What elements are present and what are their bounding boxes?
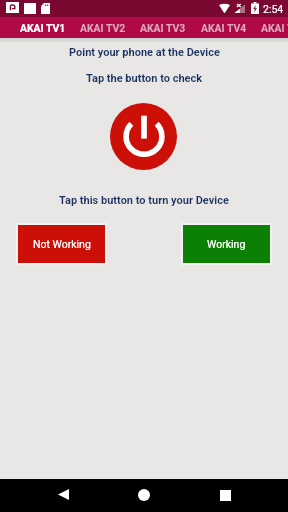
button[interactable]: Home (138, 489, 150, 501)
button[interactable]: Working (183, 225, 270, 263)
button[interactable]: AKAI TV5 (254, 17, 288, 38)
button[interactable]: AKAI TV1 (13, 17, 73, 38)
staticText: AKAI TV1 (20, 22, 66, 34)
button[interactable]: Not Working (18, 225, 105, 263)
staticText: Working (207, 238, 246, 250)
staticText: 2:54 (263, 3, 284, 15)
staticText: Tap this button to turn your Device (59, 194, 229, 207)
staticText: AKAI TV5 (261, 22, 288, 34)
button[interactable]: AKAI TV3 (133, 17, 193, 38)
button[interactable]: AKAI TV4 (194, 17, 254, 38)
staticText: AKAI TV2 (80, 22, 126, 34)
button[interactable]: AKAI TV2 (73, 17, 133, 38)
staticText: Tap the button to check (86, 72, 203, 85)
staticText: AKAI TV3 (140, 22, 186, 34)
button[interactable]: Back (58, 489, 69, 500)
staticText: AKAI TV4 (201, 22, 247, 34)
button[interactable]: Power (110, 103, 177, 170)
staticText: Point your phone at the Device (69, 46, 220, 59)
staticText: Not Working (33, 238, 91, 250)
